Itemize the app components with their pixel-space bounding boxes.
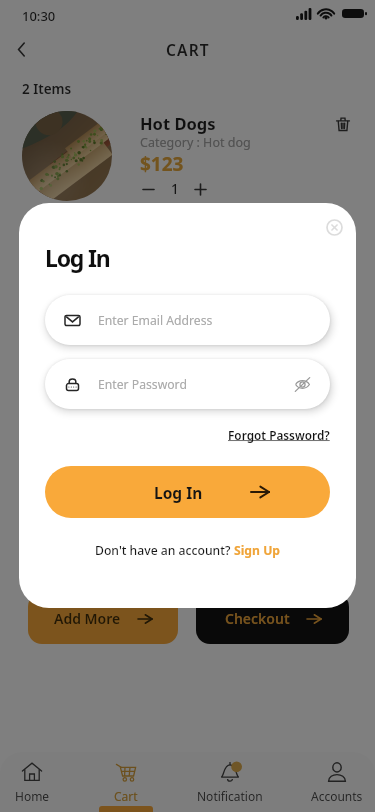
button[interactable]: Increase (190, 179, 210, 199)
staticText: Don't have an account? (95, 542, 234, 559)
button[interactable]: Sign Up (234, 542, 281, 559)
staticText: $123 (140, 151, 184, 177)
staticText: Notification (197, 788, 263, 804)
staticText: Hot Dogs (140, 112, 216, 134)
button[interactable]: Cart (83, 752, 169, 812)
button[interactable]: Back (4, 32, 38, 66)
staticText: Accounts (311, 788, 363, 804)
button[interactable]: Delete (329, 110, 357, 138)
staticText: Category : Hot dog (140, 134, 251, 151)
button[interactable]: Close (320, 213, 348, 241)
staticText: Enter Password (98, 376, 187, 393)
staticText: Add More (54, 609, 121, 628)
staticText: Checkout (225, 609, 290, 628)
button[interactable]: Decrease (138, 179, 158, 199)
button[interactable]: Checkout (196, 593, 349, 644)
button[interactable]: Add More (28, 593, 178, 644)
button[interactable]: Enter Password (45, 359, 330, 409)
staticText: Cart (114, 788, 138, 804)
staticText: Log In (45, 242, 110, 273)
staticText: Log In (154, 482, 203, 503)
button[interactable]: Accounts (294, 752, 375, 812)
button[interactable]: Log In (45, 466, 330, 518)
staticText: Home (15, 788, 50, 804)
staticText: 10:30 (22, 7, 56, 25)
staticText: Enter Email Address (98, 312, 213, 329)
staticText: 2 Items (22, 80, 72, 98)
staticText: 1 (171, 180, 179, 198)
staticText: CART (166, 39, 210, 60)
button[interactable]: Home (0, 752, 75, 812)
button[interactable]: Forgot Password? (228, 427, 330, 443)
button[interactable]: Notification (187, 752, 273, 812)
button[interactable]: Enter Email Address (45, 295, 330, 345)
